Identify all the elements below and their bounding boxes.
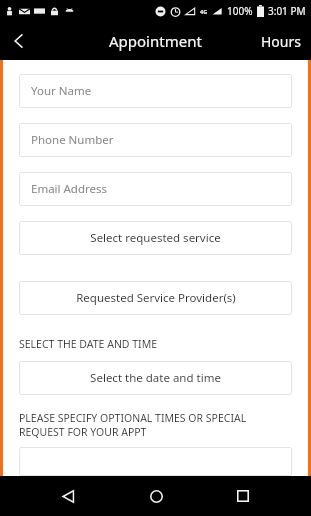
button[interactable]: Select requested service [19,221,292,255]
staticText: Hours [261,32,301,51]
staticText: Email Address [31,181,108,197]
button[interactable]: Recent apps [223,476,263,516]
staticText: PLEASE SPECIFY OPTIONAL TIMES OR SPECIAL… [19,411,292,439]
staticText: Requested Service Provider(s) [76,290,236,306]
staticText: SELECT THE DATE AND TIME [19,337,158,351]
staticText: 4G [200,8,208,15]
button[interactable]: Email Address [19,172,292,206]
button[interactable]: Home [136,476,176,516]
staticText: Select the date and time [90,370,221,386]
staticText: Phone Number [31,132,114,148]
button[interactable]: Back [48,476,88,516]
button[interactable]: Select the date and time [19,361,292,395]
staticText: 100% [227,4,253,18]
staticText: Appointment [109,31,202,51]
staticText: Your Name [31,83,92,99]
button[interactable]: Phone Number [19,123,292,157]
button[interactable]: Back [0,22,38,60]
staticText: 3:01 PM [268,4,306,18]
button[interactable]: Hours [251,22,311,60]
button[interactable]: Your Name [19,74,292,108]
staticText: Select requested service [90,230,221,246]
button[interactable] [19,447,292,476]
button[interactable]: Requested Service Provider(s) [19,281,292,315]
